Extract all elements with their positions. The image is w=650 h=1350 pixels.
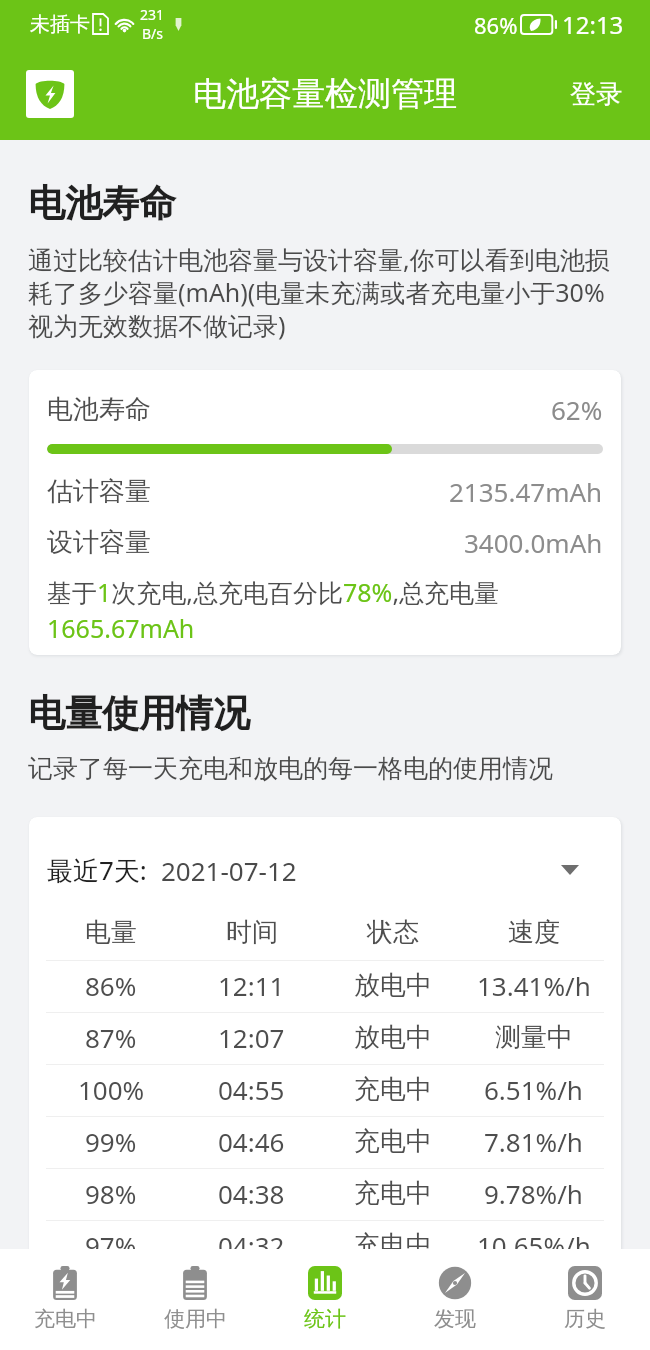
staticText: 速度 (508, 916, 560, 949)
staticText: 放电中 (354, 1021, 432, 1054)
staticText: 使用中 (164, 1306, 227, 1332)
staticText: 3400.0mAh (464, 525, 603, 560)
button[interactable]: 充电中 (0, 1249, 130, 1350)
staticText: 100% (78, 1072, 145, 1107)
staticText: 历史 (564, 1306, 606, 1332)
staticText: 电池寿命 (28, 180, 176, 227)
staticText: 04:38 (218, 1176, 285, 1211)
button[interactable]: 最近7天: (29, 844, 621, 896)
staticText: 86% (85, 968, 137, 1003)
staticText: 登录 (570, 78, 622, 111)
staticText: 97% (85, 1228, 137, 1263)
button[interactable]: 登录 (550, 64, 650, 125)
staticText: 基于1次充电,总充电百分比78%,总充电量1665.67mAh (47, 575, 603, 646)
staticText: 发现 (434, 1306, 476, 1332)
staticText: 99% (85, 1124, 137, 1159)
button[interactable]: 统计 (260, 1249, 390, 1350)
staticText: 04:32 (218, 1228, 285, 1263)
staticText: 231 (140, 5, 165, 24)
staticText: 12:07 (218, 1020, 285, 1055)
staticText: 通过比较估计电池容量与设计容量,你可以看到电池损耗了多少容量(mAh)(电量未充… (28, 242, 624, 343)
staticText: 9.78%/h (484, 1176, 583, 1211)
staticText: 2021-07-12 (161, 853, 297, 888)
staticText: 状态 (367, 916, 419, 949)
button[interactable]: 使用中 (130, 1249, 260, 1350)
staticText: 12:11 (218, 968, 285, 1003)
staticText: 时间 (226, 916, 278, 949)
staticText: 7.81%/h (484, 1124, 583, 1159)
staticText: 12:13 (562, 8, 624, 41)
staticText: 2135.47mAh (449, 474, 603, 509)
staticText: 充电中 (354, 1177, 432, 1210)
button[interactable]: 应用图标 (26, 70, 74, 118)
staticText: 放电中 (354, 969, 432, 1002)
staticText: 充电中 (354, 1125, 432, 1158)
staticText: 统计 (304, 1306, 346, 1332)
staticText: 13.41%/h (477, 968, 591, 1003)
staticText: 98% (85, 1176, 137, 1211)
staticText: 电量 (85, 916, 137, 949)
staticText: 87% (85, 1020, 137, 1055)
staticText: 设计容量 (47, 526, 151, 559)
staticText: 估计容量 (47, 475, 151, 508)
staticText: 62% (551, 392, 603, 427)
staticText: 04:46 (218, 1124, 285, 1159)
staticText: 记录了每一天充电和放电的每一格电的使用情况 (28, 753, 553, 784)
button[interactable]: 历史 (520, 1249, 650, 1350)
staticText: 充电中 (34, 1306, 97, 1332)
staticText: B/s (142, 24, 164, 43)
staticText: 电池寿命 (47, 393, 151, 426)
staticText: 04:55 (218, 1072, 285, 1107)
staticText: 电池容量检测管理 (193, 73, 457, 115)
staticText: 6.51%/h (484, 1072, 583, 1107)
staticText: 最近7天: (47, 852, 147, 888)
button[interactable]: 发现 (390, 1249, 520, 1350)
staticText: 测量中 (495, 1021, 573, 1054)
staticText: 充电中 (354, 1073, 432, 1106)
staticText: 充电中 (354, 1229, 432, 1262)
staticText: 未插卡 (30, 12, 90, 37)
staticText: 10.65%/h (477, 1228, 591, 1263)
staticText: 电量使用情况 (28, 690, 250, 737)
staticText: 86% (474, 10, 518, 40)
